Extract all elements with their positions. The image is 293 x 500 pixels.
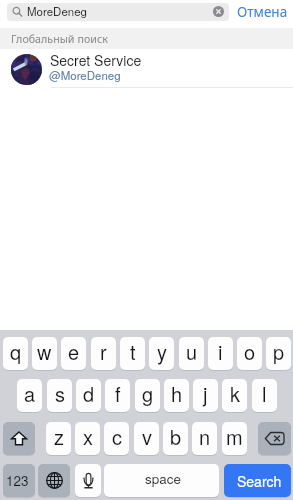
staticText: g — [142, 379, 154, 408]
button[interactable]: d — [76, 379, 101, 412]
staticText: q — [10, 337, 22, 366]
staticText: u — [186, 337, 198, 366]
staticText: w — [37, 337, 52, 366]
button[interactable]: v — [134, 422, 159, 455]
button[interactable]: Clear search text — [213, 6, 224, 17]
staticText: space — [145, 469, 182, 488]
button[interactable]: Shift — [3, 422, 35, 455]
staticText: i — [218, 337, 223, 366]
staticText: r — [100, 337, 107, 366]
button[interactable]: z — [46, 422, 71, 455]
button[interactable]: q — [3, 337, 28, 370]
staticText: b — [170, 422, 182, 451]
button[interactable]: o — [237, 337, 262, 370]
staticText: v — [142, 422, 152, 451]
button[interactable]: c — [104, 422, 129, 455]
button[interactable]: j — [193, 379, 218, 412]
staticText: z — [54, 422, 64, 451]
staticText: d — [83, 379, 95, 408]
staticText: o — [244, 337, 256, 366]
button[interactable]: 123 — [3, 464, 35, 497]
button[interactable]: w — [32, 337, 57, 370]
button[interactable]: Backspace — [258, 422, 291, 455]
staticText: Отмена — [237, 3, 288, 21]
staticText: k — [230, 379, 240, 408]
staticText: a — [24, 379, 36, 408]
staticText: c — [112, 422, 122, 451]
button[interactable]: Switch keyboard language — [38, 464, 70, 497]
staticText: n — [199, 422, 211, 451]
staticText: y — [157, 337, 167, 366]
button[interactable]: s — [47, 379, 72, 412]
staticText: t — [130, 337, 136, 366]
staticText: l — [262, 379, 267, 408]
button[interactable]: k — [222, 379, 247, 412]
button[interactable]: Secret Service — [0, 49, 293, 87]
button[interactable]: h — [164, 379, 189, 412]
button[interactable]: l — [252, 379, 277, 412]
staticText: f — [115, 379, 121, 408]
button[interactable]: b — [163, 422, 188, 455]
staticText: @MoreDeneg — [49, 67, 121, 83]
button[interactable]: Voice input — [75, 464, 101, 497]
staticText: m — [226, 422, 243, 451]
button[interactable]: n — [192, 422, 217, 455]
staticText: s — [55, 379, 65, 408]
button[interactable]: a — [17, 379, 42, 412]
button[interactable]: t — [120, 337, 145, 370]
button[interactable]: Search — [224, 464, 291, 497]
staticText: j — [203, 379, 208, 408]
staticText: MoreDeneg — [27, 3, 87, 19]
button[interactable]: Отмена — [237, 3, 288, 21]
staticText: Search — [237, 471, 282, 491]
button[interactable]: y — [149, 337, 174, 370]
button[interactable]: space — [104, 464, 219, 497]
staticText: h — [171, 379, 183, 408]
staticText: Глобальный поиск — [11, 31, 108, 46]
staticText: x — [83, 422, 93, 451]
button[interactable]: i — [208, 337, 233, 370]
staticText: p — [273, 337, 285, 366]
button[interactable]: u — [179, 337, 204, 370]
button[interactable]: f — [105, 379, 130, 412]
staticText: Secret Service — [50, 50, 142, 70]
staticText: e — [68, 337, 80, 366]
button[interactable]: p — [266, 337, 291, 370]
button[interactable]: m — [222, 422, 247, 455]
button[interactable]: g — [135, 379, 160, 412]
button[interactable]: x — [75, 422, 100, 455]
button[interactable]: e — [61, 337, 86, 370]
button[interactable] — [7, 3, 229, 21]
button[interactable]: r — [91, 337, 116, 370]
staticText: 123 — [6, 471, 29, 490]
